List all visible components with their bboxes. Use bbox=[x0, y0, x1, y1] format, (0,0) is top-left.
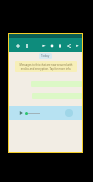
button[interactable]: Edit bbox=[23, 42, 30, 49]
staticText: Messages to this chat are now secured wi… bbox=[18, 63, 74, 70]
button[interactable]: Add bbox=[14, 42, 21, 49]
button[interactable]: Undo bbox=[73, 42, 80, 49]
button[interactable]: Share bbox=[65, 42, 72, 49]
button[interactable]: Delete bbox=[56, 42, 63, 49]
button[interactable]: Star bbox=[48, 42, 55, 49]
staticText: Today bbox=[41, 54, 50, 58]
button[interactable]: Today bbox=[39, 53, 52, 59]
button[interactable]: Messages to this chat are now secured wi… bbox=[15, 61, 77, 72]
button[interactable]: Play bbox=[18, 110, 24, 116]
button[interactable]: Flag bbox=[40, 42, 47, 49]
